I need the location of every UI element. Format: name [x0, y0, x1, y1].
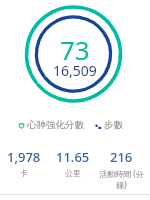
staticText: 心肺強化分數 [27, 119, 84, 131]
button[interactable]: Steps [95, 119, 123, 131]
staticText: 卡 [20, 168, 28, 178]
staticText: 1,978 [7, 148, 41, 166]
button[interactable]: 216 [97, 148, 146, 190]
other: Heart Points [18, 122, 25, 129]
staticText: 16,509 [53, 61, 97, 80]
staticText: 步數 [104, 119, 123, 131]
staticText: 活動時間 (分鐘) [97, 168, 146, 190]
staticText: 216 [110, 148, 133, 166]
staticText: 公里 [65, 168, 81, 178]
other: Steps [95, 122, 102, 129]
staticText: 73 [60, 32, 90, 67]
button[interactable]: 1,978 [0, 148, 48, 178]
button[interactable]: Heart Points [18, 119, 84, 131]
staticText: 11.65 [56, 148, 90, 166]
button[interactable]: 11.65 [48, 148, 97, 178]
